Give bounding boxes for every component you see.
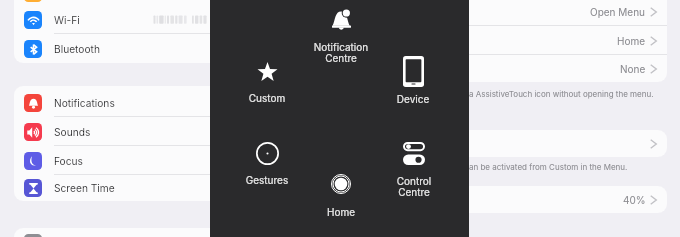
button[interactable]: Control Centre (376, 139, 452, 201)
button[interactable] (450, 130, 667, 157)
button[interactable]: Wi-Fi (14, 5, 226, 34)
button[interactable]: Notification Centre (303, 6, 379, 67)
staticText: None (620, 63, 646, 75)
staticText: Notifications (54, 97, 115, 109)
staticText: Notification Centre (303, 41, 379, 65)
button[interactable]: Sounds (14, 117, 226, 146)
button[interactable]: Notifications (14, 88, 226, 117)
button[interactable]: Device (375, 53, 451, 119)
staticText: Focus (54, 155, 83, 167)
staticText: Sounds (54, 126, 91, 138)
button[interactable]: Open Menu (450, 0, 667, 26)
button[interactable]: None (450, 55, 667, 82)
staticText: Home (303, 206, 379, 218)
staticText: Device (375, 93, 451, 105)
button[interactable]: General (14, 228, 226, 237)
staticText: a AssistiveTouch icon without opening th… (469, 89, 654, 99)
staticText: Bluetooth (54, 43, 100, 55)
button[interactable]: Screen Time (14, 175, 226, 201)
staticText: Open Menu (590, 6, 646, 18)
button[interactable]: Home (450, 26, 667, 55)
button[interactable]: Custom (229, 59, 305, 118)
staticText: Control Centre (376, 175, 452, 199)
button[interactable]: Bluetooth (14, 34, 226, 63)
button[interactable]: Home (303, 171, 379, 232)
button[interactable]: 40% (450, 186, 667, 213)
staticText: Screen Time (54, 182, 115, 194)
button[interactable]: Gestures (229, 139, 305, 200)
staticText: Custom (229, 92, 305, 104)
staticText: Home (617, 35, 646, 47)
staticText: an be activated from Custom in the Menu. (469, 162, 628, 172)
staticText: Wi-Fi (54, 14, 80, 26)
staticText: Gestures (229, 174, 305, 186)
staticText: 40% (623, 194, 646, 206)
button[interactable]: Focus (14, 146, 226, 175)
